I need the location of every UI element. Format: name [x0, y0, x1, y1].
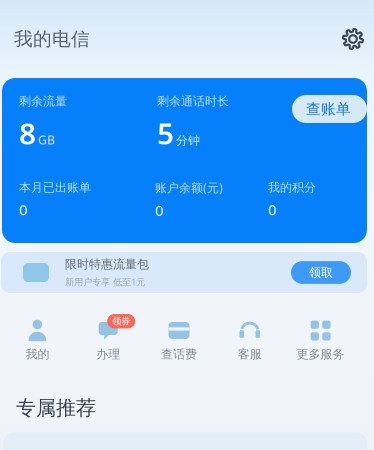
staticText: 5 — [157, 114, 174, 153]
staticText: 专属推荐 — [16, 396, 96, 420]
staticText: 本月已出账单 — [19, 180, 91, 195]
staticText: 客服 — [238, 347, 262, 362]
staticText: 我的 — [25, 347, 49, 362]
staticText: 分钟 — [176, 133, 200, 148]
staticText: 领券 — [112, 315, 130, 327]
button[interactable]: Settings — [335, 21, 371, 57]
staticText: 新用户专享 低至1元 — [65, 276, 145, 288]
staticText: 更多服务 — [297, 347, 345, 362]
staticText: 剩余通话时长 — [157, 94, 229, 109]
staticText: 0 — [155, 200, 163, 220]
staticText: 账户余额(元) — [155, 180, 223, 195]
staticText: GB — [38, 132, 55, 148]
staticText: 我的积分 — [268, 180, 316, 195]
button[interactable]: 我的 — [2, 314, 73, 362]
button[interactable]: 查账单 — [292, 95, 367, 123]
staticText: 查话费 — [161, 347, 197, 362]
staticText: 0 — [19, 200, 27, 219]
staticText: 8 — [19, 114, 36, 153]
staticText: 0 — [268, 200, 276, 219]
button[interactable]: 限时特惠流量包 — [0, 252, 374, 293]
staticText: 我的电信 — [14, 27, 90, 50]
staticText: 剩余流量 — [19, 94, 67, 109]
staticText: 领取 — [309, 265, 333, 280]
staticText: 查账单 — [306, 100, 351, 118]
button[interactable]: 更多服务 — [285, 314, 356, 362]
button[interactable]: 客服 — [214, 314, 285, 362]
button[interactable]: 查话费 — [144, 314, 214, 362]
button[interactable]: 领券 — [73, 314, 144, 362]
staticText: 限时特惠流量包 — [65, 257, 149, 272]
staticText: 办理 — [96, 347, 120, 362]
